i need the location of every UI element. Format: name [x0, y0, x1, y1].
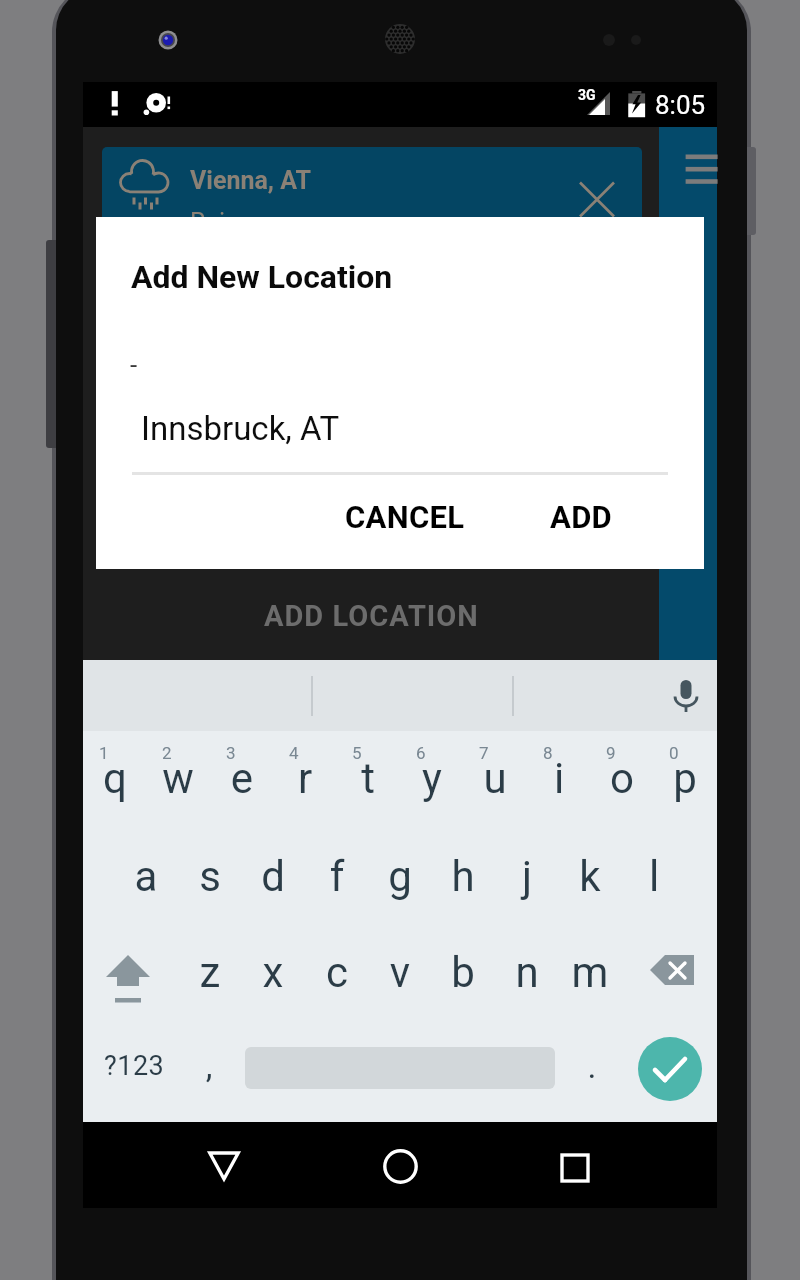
staticText: Innsbruck, AT: [141, 409, 340, 448]
staticText: e: [210, 754, 274, 803]
staticText: q: [83, 754, 147, 803]
staticText: h: [431, 852, 495, 901]
other: Remove location: [568, 171, 626, 229]
button[interactable]: ?123: [79, 1030, 189, 1102]
staticText: x: [241, 948, 305, 997]
other: Recent apps: [560, 1153, 590, 1183]
staticText: s: [178, 852, 242, 901]
button[interactable]: ADD: [533, 485, 629, 549]
staticText: Rain: [190, 208, 239, 237]
staticText: a: [114, 852, 178, 901]
other: Voice input: [667, 677, 705, 715]
staticText: l: [622, 852, 686, 901]
staticText: 5: [352, 743, 416, 763]
staticText: CANCEL: [345, 499, 465, 535]
staticText: m: [558, 948, 622, 997]
staticText: 6: [416, 743, 480, 763]
staticText: o: [590, 754, 654, 803]
staticText: c: [305, 948, 369, 997]
staticText: Vienna, AT: [190, 166, 312, 195]
staticText: ADD LOCATION: [264, 599, 479, 633]
staticText: n: [495, 948, 559, 997]
staticText: Add New Location: [131, 258, 393, 296]
staticText: t: [336, 754, 400, 803]
other: Home: [383, 1149, 418, 1184]
other: Back: [208, 1151, 240, 1183]
staticText: ,: [189, 1046, 229, 1086]
staticText: 1: [99, 743, 163, 763]
staticText: b: [431, 948, 495, 997]
button[interactable]: ADD LOCATION: [83, 572, 659, 660]
staticText: 2: [162, 743, 226, 763]
staticText: ADD: [550, 499, 613, 535]
staticText: v: [368, 948, 432, 997]
button[interactable]: Enter: [638, 1037, 702, 1101]
staticText: 8: [543, 743, 607, 763]
staticText: ?123: [104, 1050, 165, 1082]
staticText: k: [558, 852, 622, 901]
staticText: g: [368, 852, 432, 901]
staticText: f: [305, 852, 369, 901]
button[interactable]: CANCEL: [328, 485, 482, 549]
staticText: 3: [226, 743, 290, 763]
staticText: -: [130, 350, 138, 380]
other: Open navigation menu: [681, 150, 717, 182]
staticText: j: [495, 852, 559, 901]
staticText: 9: [606, 743, 670, 763]
staticText: r: [273, 754, 337, 803]
button[interactable]: Vienna, AT: [102, 147, 642, 307]
staticText: d: [241, 852, 305, 901]
staticText: 0: [669, 743, 733, 763]
staticText: i: [527, 754, 591, 803]
button[interactable]: [659, 127, 717, 1208]
staticText: p: [653, 754, 717, 803]
other: Shift: [105, 953, 157, 1005]
staticText: 3G: [578, 87, 596, 103]
staticText: w: [146, 754, 210, 803]
staticText: z: [178, 948, 242, 997]
other: Backspace: [650, 953, 696, 999]
staticText: u: [463, 754, 527, 803]
staticText: 4: [289, 743, 353, 763]
staticText: 8:05: [655, 90, 706, 120]
staticText: y: [400, 754, 464, 803]
staticText: 7: [479, 743, 543, 763]
staticText: .: [572, 1046, 612, 1086]
